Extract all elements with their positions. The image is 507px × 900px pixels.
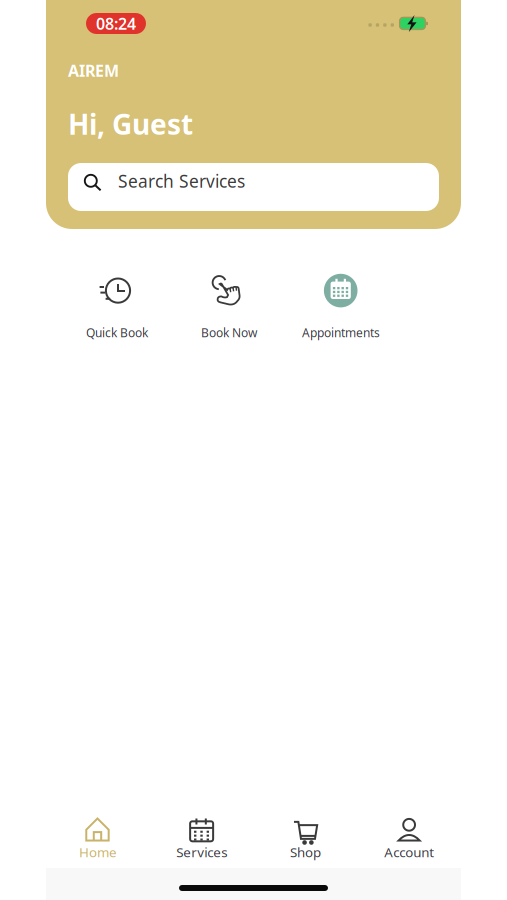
button[interactable]: Shop xyxy=(253,813,357,858)
button[interactable]: Appointments xyxy=(285,272,397,362)
button[interactable]: Search Services xyxy=(68,163,439,211)
staticText: Home xyxy=(79,843,117,861)
button[interactable]: Services xyxy=(150,813,254,858)
staticText: Account xyxy=(384,843,434,861)
button[interactable]: Home xyxy=(46,813,150,858)
staticText: Search Services xyxy=(118,169,245,192)
staticText: Book Now xyxy=(201,324,257,340)
staticText: Shop xyxy=(290,843,321,861)
staticText: Quick Book xyxy=(86,324,148,340)
button[interactable]: Account xyxy=(357,813,461,858)
staticText: Services xyxy=(176,843,227,861)
staticText: Hi, Guest xyxy=(68,105,193,143)
button[interactable]: Quick Book xyxy=(61,272,173,362)
staticText: AIREM xyxy=(68,60,119,81)
staticText: Appointments xyxy=(302,324,380,340)
button[interactable]: Book Now xyxy=(173,272,285,362)
staticText: 08:24 xyxy=(96,13,136,34)
